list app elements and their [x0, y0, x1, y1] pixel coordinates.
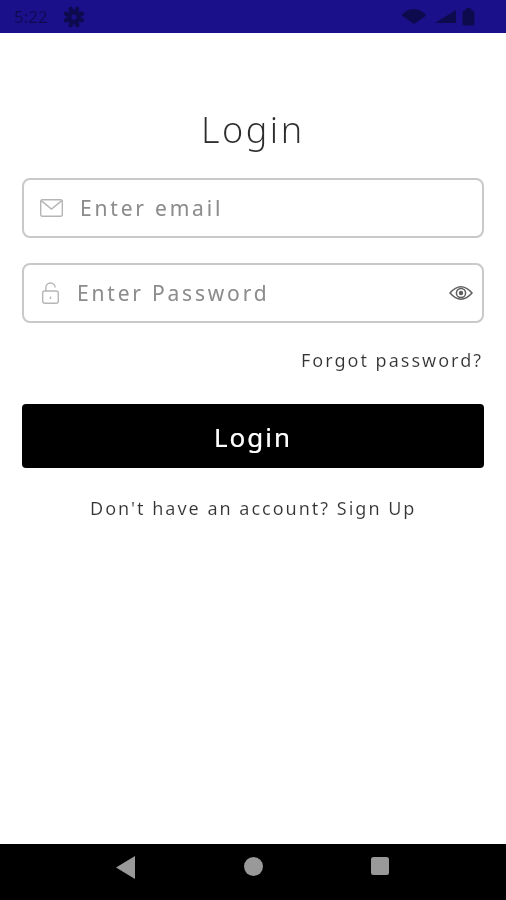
- button[interactable]: Enter email: [22, 178, 484, 238]
- button[interactable]: [356, 848, 404, 896]
- button[interactable]: Login: [22, 404, 484, 468]
- button[interactable]: [441, 273, 481, 313]
- button[interactable]: Don't have an account? Sign Up: [22, 496, 484, 521]
- staticText: Login: [201, 105, 305, 154]
- button[interactable]: [229, 848, 277, 896]
- staticText: Don't have an account? Sign Up: [90, 496, 417, 521]
- staticText: Enter Password: [77, 279, 270, 308]
- staticText: Login: [214, 419, 293, 454]
- button[interactable]: Enter Password: [22, 263, 484, 323]
- button[interactable]: [102, 848, 150, 896]
- staticText: Enter email: [80, 194, 224, 223]
- staticText: 5:22: [14, 5, 48, 28]
- button[interactable]: Forgot password?: [301, 348, 484, 373]
